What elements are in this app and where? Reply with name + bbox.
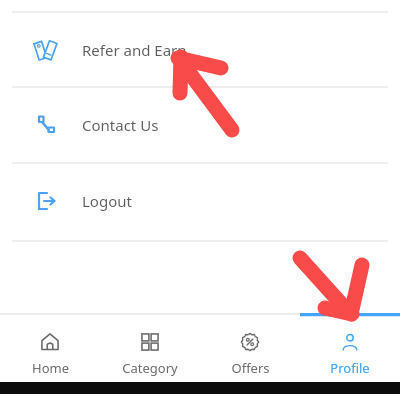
button[interactable]: Contact Us [0,87,400,163]
staticText: Home [32,359,69,377]
button[interactable]: Profile [300,317,400,382]
staticText: Contact Us [82,115,159,135]
staticText: Profile [330,359,370,377]
button[interactable]: Category [100,317,200,382]
button[interactable]: Logout [0,163,400,239]
staticText: Logout [82,191,132,211]
button[interactable]: Home [0,317,100,382]
staticText: Refer and Earn [82,40,187,60]
button[interactable]: Refer and Earn [0,12,400,88]
staticText: Category [122,359,178,377]
staticText: Offers [231,359,270,377]
button[interactable]: Offers [200,317,300,382]
